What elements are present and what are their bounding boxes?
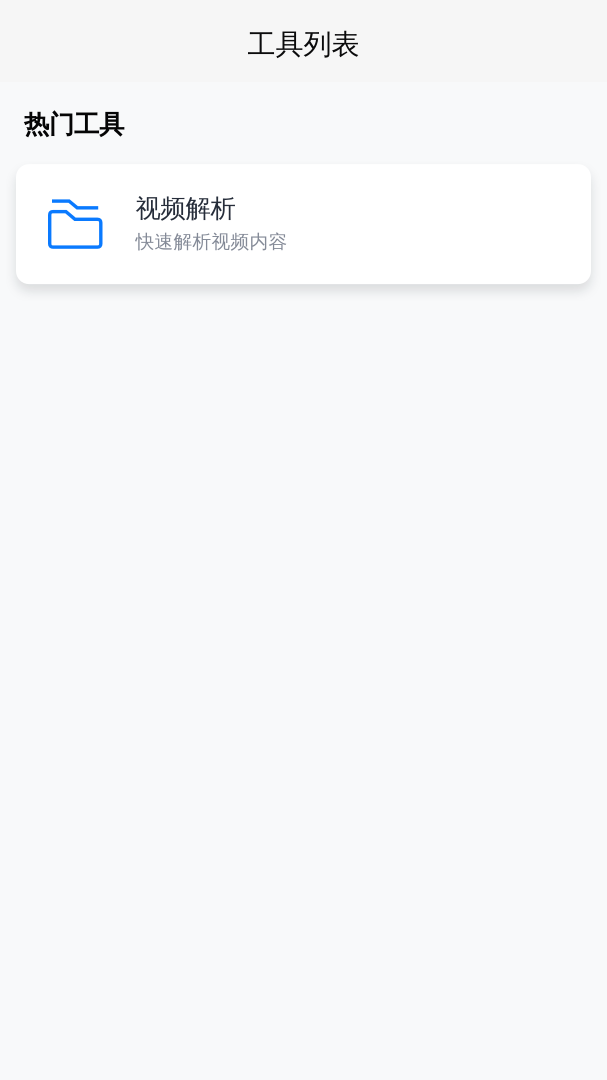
staticText: 热门工具 bbox=[24, 109, 124, 140]
staticText: 工具列表 bbox=[247, 27, 359, 62]
staticText: 视频解析 bbox=[135, 193, 235, 224]
staticText: 快速解析视频内容 bbox=[135, 230, 287, 253]
button[interactable]: 视频解析 bbox=[16, 164, 591, 284]
